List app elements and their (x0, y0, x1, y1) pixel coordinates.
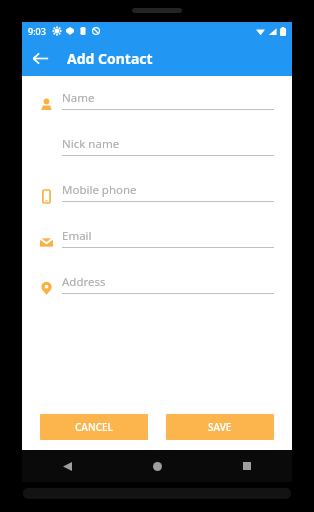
staticText: SAVE (208, 420, 232, 434)
button[interactable]: Home (141, 450, 173, 482)
button[interactable]: Recents (231, 450, 263, 482)
staticText: Name (62, 90, 95, 106)
staticText: 9:03 (28, 25, 46, 37)
staticText: Add Contact (67, 49, 153, 68)
staticText: Mobile phone (62, 182, 137, 198)
button[interactable]: Nick name (22, 136, 292, 182)
button[interactable]: Email (22, 228, 292, 274)
staticText: Nick name (62, 136, 120, 152)
staticText: Email (62, 228, 92, 244)
button[interactable]: Mobile phone (22, 182, 292, 228)
button[interactable]: CANCEL (40, 414, 148, 440)
staticText: Address (62, 274, 106, 290)
button[interactable]: Name (22, 90, 292, 136)
button[interactable]: Address (22, 274, 292, 320)
staticText: CANCEL (75, 420, 113, 434)
button[interactable]: Back (22, 40, 58, 76)
button[interactable]: Back (51, 450, 83, 482)
button[interactable]: SAVE (166, 414, 274, 440)
